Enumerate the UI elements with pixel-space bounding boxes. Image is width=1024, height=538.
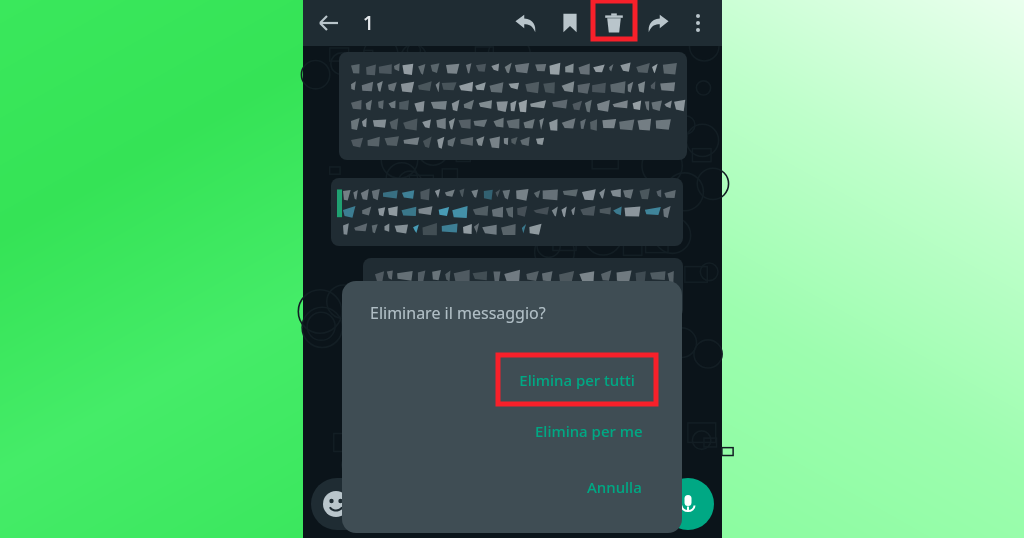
staticText: 1 [363, 10, 374, 36]
button[interactable]: Annulla [571, 470, 658, 504]
button[interactable]: Elimina per me [520, 414, 658, 448]
button[interactable]: Back [309, 3, 349, 43]
button[interactable]: Reply [504, 1, 548, 45]
staticText: Eliminare il messaggio? [370, 302, 546, 324]
staticText: Elimina per me [535, 421, 643, 441]
other: Emoji [323, 491, 349, 517]
button[interactable]: Emoji [311, 478, 651, 530]
button[interactable]: Delete [592, 1, 636, 45]
button[interactable]: Voice message [662, 478, 714, 530]
staticText: Elimina per tutti [519, 370, 635, 390]
staticText: Annulla [587, 477, 642, 497]
button[interactable]: Forward [636, 1, 680, 45]
button[interactable]: Elimina per tutti [496, 353, 658, 406]
button[interactable]: Star [548, 1, 592, 45]
button[interactable]: More options [680, 5, 716, 41]
